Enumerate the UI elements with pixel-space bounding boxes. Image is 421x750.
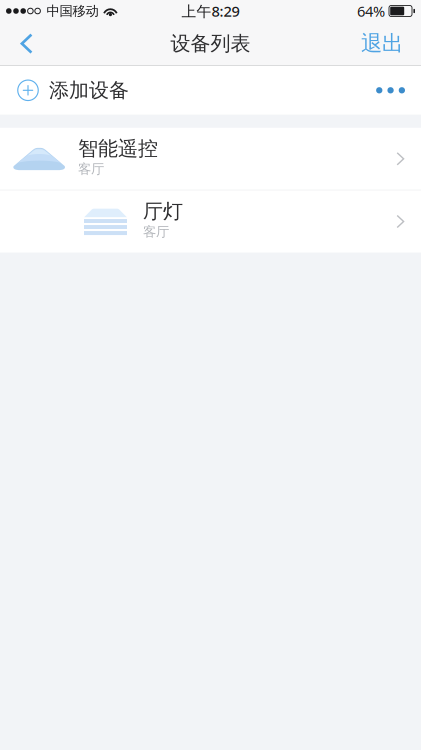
staticText: 智能遥控 <box>78 136 158 161</box>
staticText: 退出 <box>361 30 403 57</box>
button[interactable]: 厅灯 <box>0 190 421 252</box>
button[interactable]: Back <box>0 22 47 65</box>
staticText: 添加设备 <box>49 78 129 103</box>
button[interactable]: 退出 <box>347 22 421 65</box>
button[interactable]: More options <box>360 66 421 115</box>
button[interactable]: 添加设备 <box>0 66 129 115</box>
staticText: 客厅 <box>143 224 169 240</box>
staticText: 客厅 <box>78 161 104 177</box>
staticText: 上午8:29 <box>181 1 239 21</box>
staticText: 厅灯 <box>143 199 183 224</box>
staticText: 64% <box>357 1 385 21</box>
staticText: 设备列表 <box>170 31 250 56</box>
staticText: 中国移动 <box>46 3 98 19</box>
button[interactable]: 智能遥控 <box>0 128 421 190</box>
